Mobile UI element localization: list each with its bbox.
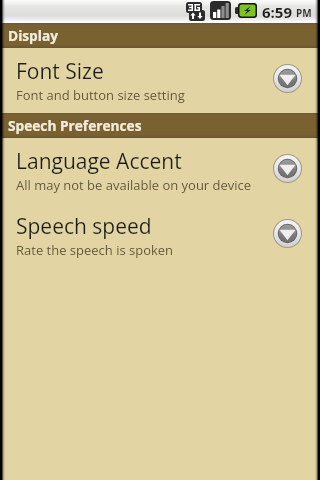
staticText: Display xyxy=(8,26,59,45)
staticText: Font Size xyxy=(16,57,104,86)
staticText: Rate the speech is spoken xyxy=(16,241,174,259)
staticText: Language Accent xyxy=(16,147,182,176)
staticText: All may not be available on your device xyxy=(16,176,252,194)
staticText: Speech speed xyxy=(16,212,152,241)
staticText: Speech Preferences xyxy=(8,116,142,135)
other: Open Font Size xyxy=(273,64,302,93)
button[interactable]: Speech speed xyxy=(0,203,320,268)
other: Open Speech speed xyxy=(273,219,302,248)
button[interactable]: Font Size xyxy=(0,48,320,113)
other: Open Language Accent xyxy=(273,154,302,183)
staticText: PM xyxy=(296,6,312,20)
staticText: Font and button size setting xyxy=(16,86,185,104)
staticText: 6:59 xyxy=(262,2,293,22)
button[interactable]: Language Accent xyxy=(0,138,320,203)
